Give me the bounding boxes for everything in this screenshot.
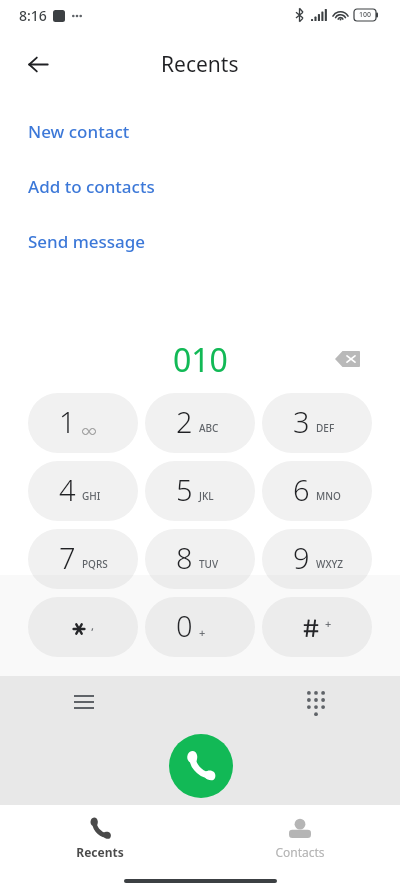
button[interactable]: 1 [28,393,138,453]
staticText: 0 [176,606,193,645]
staticText: 9 [293,538,310,577]
staticText: MNO [316,489,341,503]
staticText: 1 [59,402,76,441]
staticText: DEF [316,421,335,435]
staticText: GHI [82,489,101,503]
button[interactable]: Backspace [325,342,369,376]
button[interactable]: 5 [145,461,255,521]
staticText: PQRS [82,557,108,571]
staticText: New contact [28,120,130,143]
button[interactable]: New contact [0,104,400,159]
staticText: 3 [293,402,310,441]
staticText: + [325,616,332,631]
button[interactable]: 9 [262,529,372,589]
button[interactable]: Add to contacts [0,159,400,214]
staticText: WXYZ [316,557,344,571]
button[interactable]: Send message [0,214,400,269]
button[interactable]: Recents [0,813,200,860]
button[interactable]: Contacts [200,813,400,860]
button[interactable]: Back [16,42,60,86]
staticText: 8:16 [19,6,47,25]
button[interactable]: Menu [59,677,109,727]
staticText: + [199,625,206,640]
staticText: 6 [293,470,310,509]
button[interactable]: 2 [145,393,255,453]
button[interactable]: 6 [262,461,372,521]
button[interactable]: + [262,597,372,657]
staticText: JKL [199,489,214,503]
button[interactable]: 3 [262,393,372,453]
staticText: 5 [176,470,193,509]
staticText: 4 [59,470,76,509]
staticText: Recents [76,844,124,860]
button[interactable]: 7 [28,529,138,589]
staticText: Recents [161,50,239,79]
button[interactable]: Call [169,734,233,798]
staticText: Add to contacts [28,175,155,198]
button[interactable]: Dialpad [291,677,341,727]
staticText: ABC [199,421,219,435]
button[interactable]: 8 [145,529,255,589]
staticText: 010 [173,338,228,382]
staticText: Contacts [275,844,325,860]
staticText: 8 [176,538,193,577]
staticText: Send message [28,230,146,253]
staticText: 2 [176,402,193,441]
staticText: , [91,618,95,633]
staticText: TUV [199,557,219,571]
button[interactable]: 4 [28,461,138,521]
staticText: 7 [59,538,76,577]
button[interactable]: , [28,597,138,657]
staticText: 100 [359,10,372,20]
button[interactable]: 0 [145,597,255,657]
